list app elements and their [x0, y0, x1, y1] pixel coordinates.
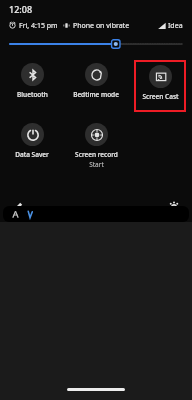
button[interactable]: Data Saver [0, 120, 64, 159]
staticText: 12:08 [9, 3, 33, 15]
staticText: Start [89, 160, 104, 169]
button[interactable]: Bluetooth [0, 60, 64, 99]
staticText: Bluetooth [17, 90, 48, 99]
button[interactable]: Screen record [64, 120, 128, 169]
staticText: Fri, 4:15 pm [19, 21, 58, 31]
button[interactable]: App shortcut [11, 210, 20, 219]
staticText: Idea [168, 21, 183, 31]
button[interactable]: Settings [166, 199, 182, 215]
button[interactable]: Screen Cast [136, 62, 184, 101]
button[interactable]: Brightness [10, 37, 182, 51]
staticText: Data Saver [15, 150, 49, 159]
button[interactable]: App shortcut [26, 210, 35, 219]
staticText: Screen record [75, 150, 118, 159]
staticText: Screen Cast [142, 92, 179, 101]
staticText: Phone on vibrate [73, 21, 130, 31]
staticText: Bedtime mode [73, 90, 119, 99]
button[interactable]: Edit tiles [10, 199, 26, 215]
button[interactable]: Bedtime mode [64, 60, 128, 99]
